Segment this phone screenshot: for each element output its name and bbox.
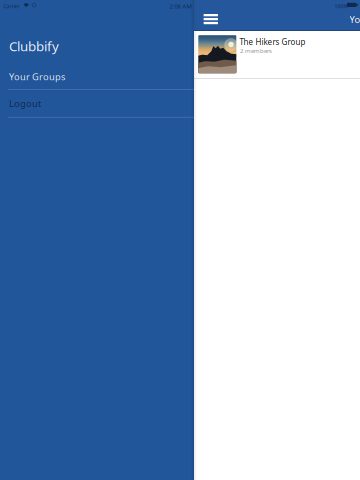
button[interactable]: Your Groups — [0, 64, 194, 89]
staticText: Clubbify — [9, 37, 59, 55]
staticText: 2:08 AM — [169, 2, 191, 10]
button[interactable]: The Hikers Group — [194, 31, 360, 79]
staticText: Your Groups — [349, 13, 360, 26]
staticText: The Hikers Group — [239, 36, 305, 47]
staticText: 100% — [334, 3, 347, 10]
staticText: Logout — [9, 97, 41, 110]
staticText: Your Groups — [9, 70, 65, 83]
button[interactable]: Logout — [0, 90, 194, 117]
button[interactable]: Menu — [197, 4, 225, 35]
staticText: Carrier — [4, 3, 20, 10]
staticText: 2 members — [240, 46, 272, 55]
